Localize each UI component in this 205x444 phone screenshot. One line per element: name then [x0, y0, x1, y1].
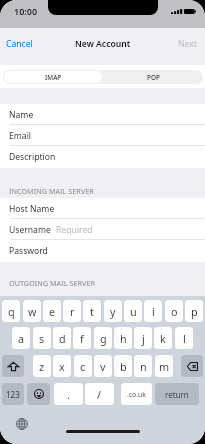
- button[interactable]: Host Name: [0, 198, 205, 219]
- button[interactable]: Backspace: [181, 355, 203, 377]
- button[interactable]: a: [12, 327, 30, 349]
- staticText: f: [80, 331, 84, 346]
- button[interactable]: e: [43, 300, 61, 322]
- staticText: Description: [9, 151, 56, 163]
- button[interactable]: y: [104, 300, 122, 322]
- staticText: Password: [9, 245, 48, 257]
- staticText: POP: [147, 73, 160, 82]
- button[interactable]: f: [73, 327, 91, 349]
- button[interactable]: Emoji: [27, 383, 50, 405]
- staticText: 10:00: [14, 5, 38, 17]
- button[interactable]: p: [185, 300, 203, 322]
- button[interactable]: u: [124, 300, 142, 322]
- staticText: a: [18, 331, 25, 346]
- staticText: Host Name: [9, 203, 55, 215]
- staticText: t: [90, 304, 94, 319]
- button[interactable]: r: [63, 300, 81, 322]
- staticText: return: [165, 389, 189, 400]
- button[interactable]: Change keyboard: [16, 418, 28, 430]
- button[interactable]: Next: [170, 35, 205, 53]
- button[interactable]: Name: [0, 104, 205, 125]
- staticText: u: [130, 304, 137, 319]
- staticText: o: [171, 304, 178, 319]
- button[interactable]: return: [155, 383, 199, 405]
- staticText: c: [80, 359, 86, 374]
- staticText: i: [152, 304, 155, 319]
- button[interactable]: v: [94, 355, 112, 377]
- staticText: Next: [178, 38, 197, 50]
- staticText: v: [100, 359, 106, 374]
- button[interactable]: Shift: [2, 355, 24, 377]
- staticText: n: [140, 359, 147, 374]
- staticText: IMAP: [45, 73, 62, 82]
- button[interactable]: m: [155, 355, 173, 377]
- staticText: h: [120, 331, 127, 346]
- staticText: z: [39, 359, 45, 374]
- staticText: d: [59, 331, 66, 346]
- staticText: e: [49, 304, 56, 319]
- button[interactable]: d: [53, 327, 71, 349]
- button[interactable]: Cancel: [0, 35, 39, 53]
- staticText: y: [110, 304, 116, 319]
- staticText: k: [160, 331, 166, 346]
- staticText: New Account: [75, 38, 131, 50]
- button[interactable]: i: [144, 300, 162, 322]
- button[interactable]: IMAP: [4, 71, 102, 83]
- staticText: Required: [56, 224, 93, 236]
- button[interactable]: c: [74, 355, 92, 377]
- staticText: Email: [9, 130, 32, 142]
- button[interactable]: .co.uk: [121, 383, 152, 405]
- button[interactable]: x: [53, 355, 71, 377]
- staticText: Name: [9, 109, 34, 121]
- staticText: b: [120, 359, 127, 374]
- button[interactable]: q: [2, 300, 20, 322]
- button[interactable]: w: [23, 300, 41, 322]
- button[interactable]: s: [33, 327, 51, 349]
- button[interactable]: k: [154, 327, 172, 349]
- button[interactable]: z: [33, 355, 51, 377]
- staticText: l: [183, 331, 186, 346]
- button[interactable]: n: [134, 355, 152, 377]
- button[interactable]: h: [114, 327, 132, 349]
- staticText: .: [67, 387, 70, 402]
- button[interactable]: 123: [2, 383, 24, 405]
- button[interactable]: POP: [103, 70, 203, 84]
- staticText: Cancel: [6, 38, 33, 50]
- button[interactable]: o: [165, 300, 183, 322]
- staticText: .co.uk: [127, 390, 146, 399]
- staticText: x: [59, 359, 65, 374]
- button[interactable]: l: [175, 327, 193, 349]
- staticText: g: [100, 331, 107, 346]
- button[interactable]: /: [85, 383, 114, 405]
- staticText: j: [142, 331, 145, 346]
- staticText: Username: [9, 224, 51, 236]
- button[interactable]: g: [94, 327, 112, 349]
- staticText: OUTGOING MAIL SERVER: [9, 278, 95, 288]
- button[interactable]: Username: [0, 219, 205, 240]
- staticText: 123: [6, 389, 20, 400]
- button[interactable]: b: [114, 355, 132, 377]
- staticText: r: [70, 304, 75, 319]
- staticText: m: [159, 359, 170, 374]
- button[interactable]: Email: [0, 125, 205, 146]
- button[interactable]: Password: [0, 240, 205, 261]
- staticText: INCOMING MAIL SERVER: [9, 186, 94, 196]
- button[interactable]: Description: [0, 146, 205, 167]
- staticText: q: [8, 304, 15, 319]
- staticText: /: [97, 387, 102, 402]
- button[interactable]: t: [83, 300, 101, 322]
- button[interactable]: j: [134, 327, 152, 349]
- staticText: p: [191, 304, 198, 319]
- staticText: s: [39, 331, 45, 346]
- button[interactable]: .: [54, 383, 83, 405]
- staticText: w: [28, 304, 37, 319]
